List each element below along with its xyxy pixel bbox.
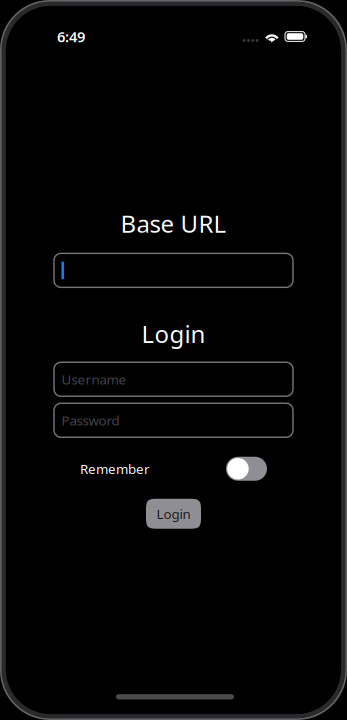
- staticText: 6:49: [57, 27, 85, 46]
- button[interactable]: Username: [54, 362, 293, 396]
- button[interactable]: Password: [54, 403, 293, 437]
- staticText: Password: [61, 411, 119, 429]
- button[interactable]: Login: [146, 499, 201, 529]
- staticText: Username: [61, 370, 126, 388]
- staticText: Login: [156, 505, 190, 523]
- button[interactable]: Remember toggle: [226, 457, 267, 481]
- staticText: Remember: [80, 460, 150, 478]
- staticText: Login: [141, 318, 205, 350]
- staticText: Base URL: [120, 207, 226, 239]
- button[interactable]: Base URL: [54, 253, 293, 287]
